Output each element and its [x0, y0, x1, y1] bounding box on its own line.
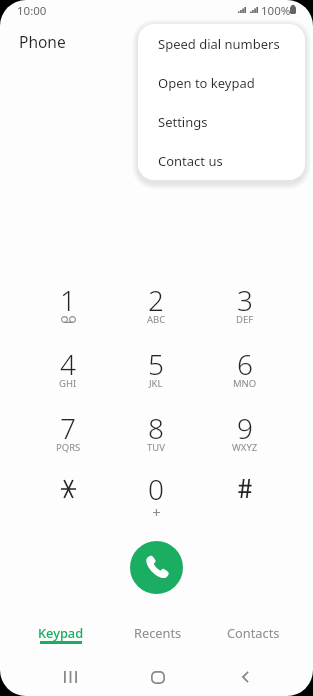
button[interactable]: 8 [118, 409, 194, 469]
button[interactable]: Back [218, 658, 273, 696]
staticText: 7 [60, 409, 76, 447]
button[interactable]: Contact us [138, 141, 305, 180]
button[interactable]: Home [130, 658, 185, 696]
button[interactable]: Settings [138, 102, 305, 141]
staticText: 10:00 [17, 3, 47, 19]
button[interactable]: Call [130, 541, 183, 594]
staticText: Open to keypad [158, 74, 255, 92]
button[interactable]: Open to keypad [138, 63, 305, 102]
button[interactable]: Recent apps [43, 658, 98, 696]
button[interactable]: Recents [113, 612, 203, 650]
button[interactable]: 5 [118, 345, 194, 405]
staticText: Keypad [38, 624, 84, 641]
button[interactable]: 3 [207, 281, 283, 341]
button[interactable]: 9 [207, 409, 283, 469]
staticText: Contact us [158, 152, 223, 170]
button[interactable]: 7 [30, 409, 106, 469]
staticText: 5 [148, 345, 164, 383]
staticText: Contacts [227, 624, 280, 641]
staticText: 0 [148, 470, 164, 508]
staticText: PQRS [56, 441, 81, 454]
staticText: Settings [158, 113, 208, 131]
button[interactable]: 6 [207, 345, 283, 405]
staticText: Phone [19, 31, 66, 52]
staticText: 8 [148, 409, 164, 447]
staticText: 1 [60, 281, 76, 319]
button[interactable]: 2 [118, 281, 194, 341]
button[interactable]: 4 [30, 345, 106, 405]
staticText: TUV [147, 441, 165, 454]
staticText: 6 [237, 345, 253, 383]
button[interactable]: 1 [30, 281, 106, 341]
staticText: 100% [261, 3, 291, 19]
staticText: GHI [59, 377, 77, 390]
staticText: MNO [233, 377, 257, 390]
staticText: DEF [236, 313, 254, 326]
staticText: 9 [237, 409, 253, 447]
staticText: 2 [148, 281, 164, 319]
staticText: ABC [147, 313, 166, 326]
staticText: Speed dial numbers [158, 35, 280, 53]
staticText: JKL [149, 377, 163, 390]
button[interactable]: Speed dial numbers [138, 24, 305, 63]
button[interactable] [30, 470, 106, 530]
staticText: 4 [60, 345, 76, 383]
staticText: WXYZ [232, 441, 258, 454]
button[interactable]: 0 [118, 470, 194, 530]
button[interactable]: Keypad [16, 612, 106, 650]
button[interactable] [207, 470, 283, 530]
button[interactable]: Contacts [208, 612, 298, 650]
staticText: 3 [237, 281, 253, 319]
staticText: Recents [134, 624, 182, 641]
